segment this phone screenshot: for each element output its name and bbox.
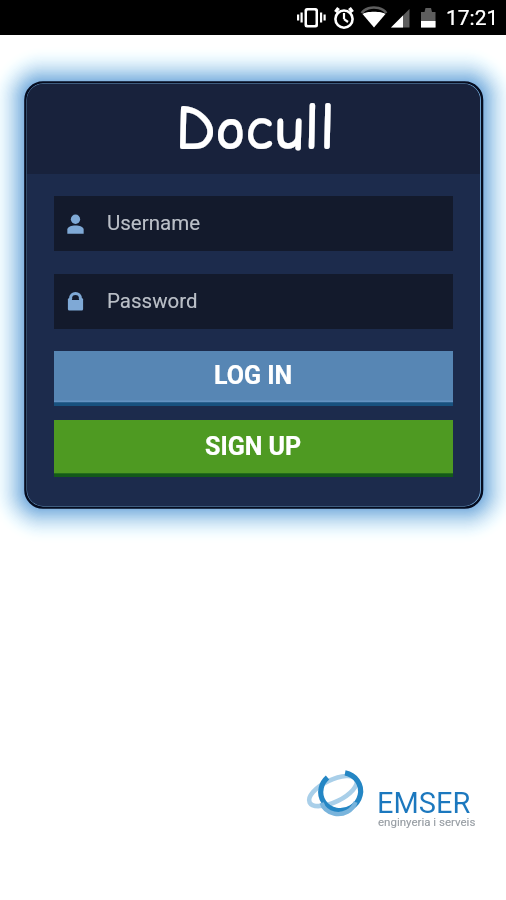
staticText: Docull — [175, 88, 335, 167]
staticText: 17:21 — [446, 6, 499, 31]
staticText: Username — [107, 211, 201, 235]
staticText: SIGN UP — [205, 432, 302, 461]
staticText: EMSER — [377, 786, 471, 820]
staticText: LOG IN — [214, 361, 293, 390]
other: EMSER logo — [307, 769, 369, 821]
other: Password — [66, 292, 85, 312]
button[interactable]: LOG IN — [54, 351, 453, 406]
staticText: enginyeria i serveis — [378, 815, 476, 828]
button[interactable]: Account — [54, 196, 453, 251]
other: Account — [66, 214, 85, 234]
button[interactable]: Password — [54, 274, 453, 329]
button[interactable]: SIGN UP — [54, 420, 453, 477]
staticText: Password — [107, 289, 198, 313]
